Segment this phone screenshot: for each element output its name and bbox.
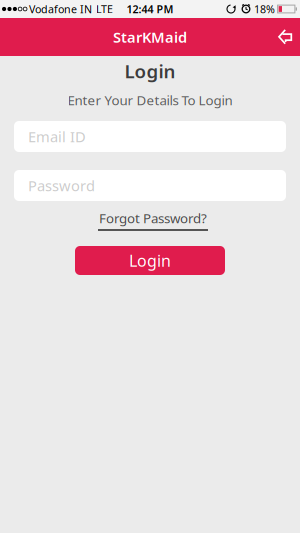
staticText: 18% — [254, 2, 275, 16]
staticText: Vodafone IN — [29, 2, 92, 16]
staticText: Login — [124, 59, 175, 83]
button[interactable]: Forgot Password? — [98, 211, 208, 231]
staticText: Enter Your Details To Login — [67, 91, 232, 109]
staticText: Login — [129, 250, 171, 271]
staticText: Password — [28, 176, 95, 195]
staticText: LTE — [96, 2, 113, 16]
staticText: Email ID — [28, 127, 86, 146]
staticText: 12:44 PM — [126, 2, 173, 16]
button[interactable] — [278, 29, 300, 45]
button[interactable]: Login — [75, 246, 225, 275]
staticText: Forgot Password? — [99, 209, 207, 227]
staticText: StarKMaid — [113, 27, 187, 47]
